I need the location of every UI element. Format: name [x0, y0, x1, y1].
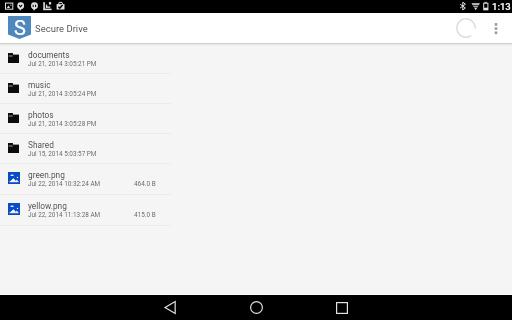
staticText: green.png [28, 170, 65, 180]
staticText: Jul 22, 2014 10:32:24 AM [28, 180, 101, 188]
button[interactable]: documents [0, 44, 512, 74]
staticText: Secure Drive [35, 23, 88, 34]
button[interactable]: yellow.png [0, 195, 512, 226]
staticText: Shared [28, 140, 54, 150]
staticText: photos [28, 110, 54, 120]
staticText: Jul 21, 2014 3:05:28 PM [28, 120, 97, 128]
staticText: documents [28, 50, 70, 60]
button[interactable]: Recent apps [299, 295, 385, 320]
staticText: 1:13 [492, 1, 511, 12]
button[interactable]: music [0, 74, 512, 104]
button[interactable]: More options [482, 14, 509, 41]
button[interactable]: Back [127, 295, 213, 320]
staticText: Jul 22, 2014 11:13:28 AM [28, 211, 101, 219]
button[interactable]: Syncing [452, 14, 479, 41]
staticText: yellow.png [28, 201, 67, 211]
staticText: music [28, 80, 51, 90]
button[interactable]: Home [213, 295, 299, 320]
staticText: 415.0 B [134, 211, 156, 219]
staticText: 464.0 B [134, 180, 156, 188]
button[interactable]: green.png [0, 164, 512, 195]
staticText: Jul 21, 2014 3:05:24 PM [28, 90, 97, 98]
staticText: S [14, 16, 26, 39]
staticText: Jul 21, 2014 3:05:21 PM [28, 60, 97, 68]
button[interactable]: photos [0, 104, 512, 134]
button[interactable]: Shared [0, 134, 512, 164]
staticText: Jul 15, 2014 5:03:57 PM [28, 150, 97, 158]
